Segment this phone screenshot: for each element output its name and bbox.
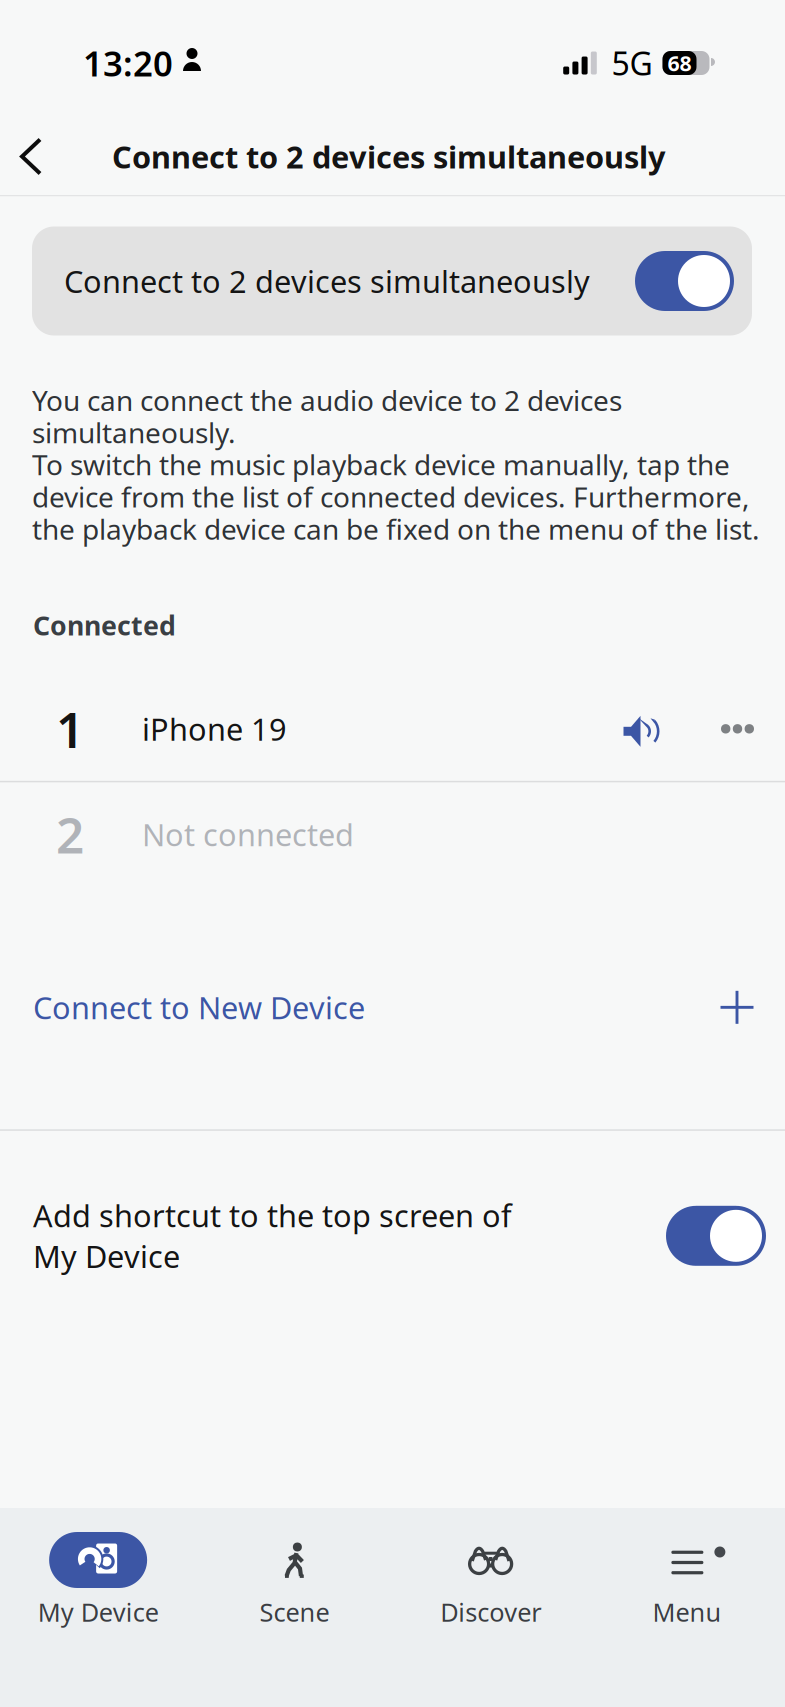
staticText: 2: [56, 802, 84, 867]
staticText: 68: [667, 49, 691, 77]
staticText: Not connected: [142, 814, 354, 855]
staticText: Menu: [652, 1595, 721, 1629]
button[interactable]: Connect to New Device: [0, 972, 785, 1042]
button[interactable]: My Device: [0, 1532, 196, 1629]
staticText: 13:20: [83, 40, 173, 86]
staticText: Connect to New Device: [33, 987, 365, 1028]
staticText: Connected: [33, 607, 176, 643]
staticText: iPhone 19: [142, 708, 287, 749]
staticText: Connect to 2 devices simultaneously: [112, 136, 666, 177]
staticText: 1: [56, 696, 84, 762]
button[interactable]: Discover: [392, 1532, 589, 1629]
button[interactable]: Connect to 2 devices simultaneously: [32, 226, 752, 335]
staticText: Connect to 2 devices simultaneously: [64, 261, 590, 301]
button[interactable]: Back: [0, 118, 62, 195]
staticText: You can connect the audio device to 2 de…: [32, 381, 760, 547]
staticText: Discover: [440, 1595, 541, 1629]
staticText: My Device: [38, 1595, 159, 1629]
staticText: Add shortcut to the top screen of My Dev…: [33, 1195, 512, 1276]
button[interactable]: Menu: [589, 1532, 785, 1629]
staticText: Scene: [259, 1595, 329, 1629]
button[interactable]: Add shortcut to the top screen of My Dev…: [0, 1181, 785, 1291]
button[interactable]: 2: [0, 782, 785, 886]
staticText: 5G: [611, 42, 652, 84]
button[interactable]: 1: [0, 677, 785, 781]
button[interactable]: Scene: [196, 1532, 392, 1629]
